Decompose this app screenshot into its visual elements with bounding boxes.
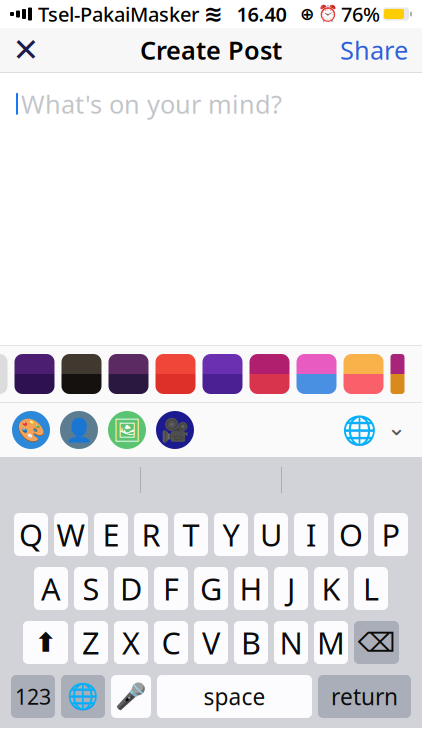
button[interactable]: Y xyxy=(214,513,248,556)
staticText: 🌐 xyxy=(342,414,377,446)
button[interactable]: Delete xyxy=(354,621,399,664)
staticText: Create Post xyxy=(140,33,282,67)
staticText: X xyxy=(122,622,140,663)
staticText: 🎥 xyxy=(161,417,189,443)
staticText: ⏰ xyxy=(318,5,338,23)
button[interactable]: X xyxy=(114,621,148,664)
staticText: 🖼 xyxy=(112,417,141,443)
button[interactable]: H xyxy=(234,567,268,610)
staticText: 👤 xyxy=(65,417,93,443)
staticText: O xyxy=(339,514,363,555)
button[interactable]: A xyxy=(34,567,68,610)
button[interactable]: space xyxy=(157,675,312,718)
staticText: Y xyxy=(222,514,239,555)
button[interactable]: B xyxy=(234,621,268,664)
staticText: K xyxy=(321,568,340,609)
staticText: 🌐 xyxy=(67,682,99,711)
staticText: return xyxy=(331,681,398,711)
staticText: What's on your mind? xyxy=(21,87,282,121)
button[interactable]: C xyxy=(154,621,188,664)
staticText: U xyxy=(260,514,282,555)
button[interactable]: Dictation xyxy=(111,675,151,718)
button[interactable]: D xyxy=(114,567,148,610)
staticText: V xyxy=(202,622,220,663)
staticText: F xyxy=(163,568,179,609)
staticText: 76% xyxy=(341,1,380,27)
button[interactable]: Shift xyxy=(23,621,68,664)
staticText: M xyxy=(317,622,345,663)
staticText: ⌄ xyxy=(387,415,406,440)
staticText: R xyxy=(141,514,160,555)
button[interactable]: S xyxy=(74,567,108,610)
staticText: 🎤 xyxy=(115,682,147,711)
button[interactable]: Next keyboard xyxy=(61,675,105,718)
staticText: Q xyxy=(19,514,43,555)
button[interactable]: E xyxy=(94,513,128,556)
staticText: ⬆ xyxy=(34,627,56,658)
button[interactable]: U xyxy=(254,513,288,556)
button[interactable]: Live video xyxy=(156,411,194,449)
staticText: L xyxy=(363,568,379,609)
staticText: I xyxy=(306,514,316,555)
staticText: W xyxy=(56,514,85,555)
button[interactable]: N xyxy=(274,621,308,664)
button[interactable]: K xyxy=(314,567,348,610)
button[interactable]: O xyxy=(334,513,368,556)
staticText: E xyxy=(102,514,119,555)
staticText: Tsel-PakaiMasker xyxy=(38,1,199,27)
button[interactable]: V xyxy=(194,621,228,664)
button[interactable]: Tag people xyxy=(60,411,98,449)
button[interactable]: Q xyxy=(14,513,48,556)
button[interactable]: Audience selector xyxy=(338,408,410,452)
staticText: Share xyxy=(340,33,408,67)
staticText: P xyxy=(381,514,400,555)
button[interactable]: W xyxy=(54,513,88,556)
button[interactable]: Z xyxy=(74,621,108,664)
button[interactable]: P xyxy=(374,513,408,556)
staticText: space xyxy=(203,681,265,711)
staticText: 123 xyxy=(15,682,51,711)
button[interactable]: M xyxy=(314,621,348,664)
staticText: G xyxy=(200,568,222,609)
button[interactable]: Photo xyxy=(108,411,146,449)
staticText: S xyxy=(82,568,99,609)
button[interactable]: Close xyxy=(0,28,52,72)
staticText: A xyxy=(41,568,61,609)
button[interactable]: J xyxy=(274,567,308,610)
staticText: D xyxy=(120,568,142,609)
button[interactable]: F xyxy=(154,567,188,610)
button[interactable]: G xyxy=(194,567,228,610)
staticText: J xyxy=(287,568,295,609)
staticText: 16.40 xyxy=(236,1,286,27)
staticText: 🎨 xyxy=(17,417,45,443)
staticText: C xyxy=(161,622,180,663)
staticText: Z xyxy=(82,622,100,663)
staticText: T xyxy=(182,514,199,555)
button[interactable]: Select photos xyxy=(0,354,7,394)
staticText: ⊕ xyxy=(300,4,315,24)
button[interactable]: R xyxy=(134,513,168,556)
button[interactable]: 123 xyxy=(11,675,55,718)
staticText: H xyxy=(239,568,262,609)
staticText: N xyxy=(279,622,302,663)
button[interactable]: L xyxy=(354,567,388,610)
button[interactable]: I xyxy=(294,513,328,556)
staticText: ✕ xyxy=(12,32,39,68)
staticText: ≋ xyxy=(204,1,223,27)
button[interactable]: return xyxy=(318,675,411,718)
button[interactable]: T xyxy=(174,513,208,556)
button[interactable]: Share xyxy=(326,28,422,72)
button[interactable]: Background color xyxy=(12,411,50,449)
staticText: ⌫ xyxy=(357,627,395,658)
staticText: B xyxy=(241,622,261,663)
